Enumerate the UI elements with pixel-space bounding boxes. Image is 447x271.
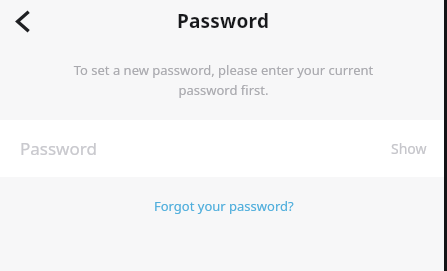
button[interactable]: Password: [0, 120, 447, 177]
staticText: To set a new password, please enter your…: [68, 61, 379, 99]
button[interactable]: Forgot your password?: [140, 192, 308, 220]
staticText: Password: [177, 8, 270, 34]
staticText: Password: [20, 137, 97, 160]
staticText: Show: [391, 139, 427, 158]
button[interactable]: Show: [381, 120, 437, 177]
button[interactable]: Back: [5, 4, 39, 38]
staticText: Forgot your password?: [154, 197, 294, 215]
